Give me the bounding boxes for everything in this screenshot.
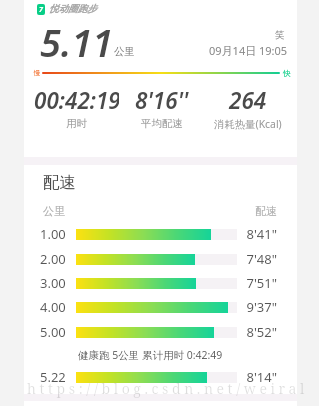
- staticText: 8'52": [243, 323, 277, 341]
- staticText: 5.11: [40, 16, 114, 68]
- button[interactable]: 7: [37, 3, 97, 15]
- staticText: 配速: [43, 172, 76, 193]
- staticText: 8'41": [243, 225, 277, 243]
- staticText: 快: [283, 69, 291, 78]
- staticText: 平均配速: [141, 117, 183, 130]
- staticText: 笑: [275, 29, 285, 41]
- staticText: 00:42:19: [34, 85, 119, 116]
- button[interactable]: 5.22: [24, 365, 297, 389]
- staticText: 公里: [43, 204, 65, 218]
- staticText: https://blog.csdn.net/weiral: [27, 379, 308, 398]
- staticText: 消耗热量(Kcal): [214, 117, 282, 131]
- staticText: 悦动圈跑步: [49, 3, 97, 15]
- staticText: 9'37": [243, 298, 277, 316]
- button[interactable]: 4.00: [24, 295, 297, 319]
- staticText: 4.00: [40, 298, 76, 316]
- button[interactable]: 3.00: [24, 271, 297, 295]
- staticText: 7'48": [243, 250, 277, 268]
- staticText: 1.00: [40, 225, 76, 243]
- staticText: 公里: [114, 45, 135, 58]
- staticText: 264: [229, 85, 267, 116]
- staticText: 5.00: [40, 323, 76, 341]
- button[interactable]: 2.00: [24, 247, 297, 271]
- staticText: 慢: [34, 69, 41, 77]
- staticText: 8'16'': [135, 85, 189, 116]
- staticText: 2.00: [40, 250, 76, 268]
- staticText: 7'51": [243, 274, 277, 292]
- staticText: 健康跑 5公里 累计用时 0:42:49: [78, 348, 223, 362]
- staticText: 09月14日 19:05: [209, 43, 288, 58]
- button[interactable]: 5.00: [24, 320, 297, 344]
- staticText: 配速: [255, 204, 277, 218]
- staticText: 5.22: [40, 368, 76, 386]
- button[interactable]: 1.00: [24, 222, 297, 246]
- staticText: 3.00: [40, 274, 76, 292]
- staticText: 8'14": [243, 368, 277, 386]
- staticText: 用时: [66, 117, 87, 130]
- staticText: 7: [39, 5, 43, 15]
